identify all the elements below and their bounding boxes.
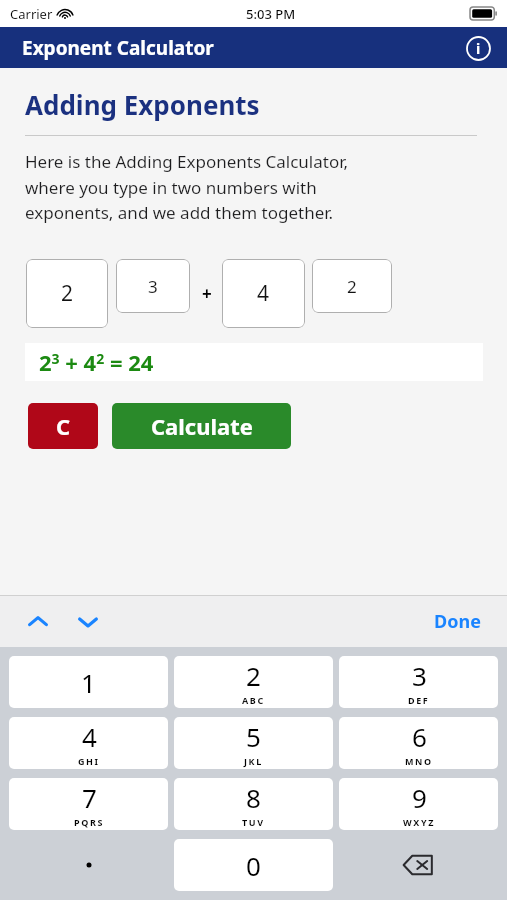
button[interactable]: Backspace — [339, 839, 498, 891]
staticText: 3 — [148, 275, 158, 298]
staticText: ABC — [242, 694, 265, 706]
button[interactable]: 4 — [222, 259, 305, 328]
staticText: 8 — [246, 780, 261, 815]
staticText: Carrier — [10, 5, 53, 23]
staticText: GHI — [78, 755, 100, 767]
button[interactable]: 7 — [9, 778, 168, 830]
button[interactable]: 2 — [26, 259, 108, 328]
button[interactable]: Previous field — [18, 602, 58, 642]
button[interactable]: 3 — [339, 656, 498, 708]
staticText: 5 — [246, 719, 261, 754]
staticText: + — [202, 282, 212, 305]
staticText: Adding Exponents — [25, 87, 260, 122]
button[interactable]: Done — [428, 601, 487, 642]
button[interactable]: 1 — [9, 656, 168, 708]
staticText: 23 + 42 = 24 — [39, 347, 154, 377]
staticText: 3 — [412, 658, 427, 693]
button[interactable]: 9 — [339, 778, 498, 830]
button[interactable]: 3 — [116, 259, 190, 313]
button[interactable]: Info — [463, 33, 493, 63]
button[interactable]: C — [28, 403, 98, 449]
staticText: Exponent Calculator — [22, 35, 214, 61]
staticText: 7 — [82, 780, 97, 815]
staticText: 1 — [81, 665, 96, 700]
staticText: TUV — [242, 816, 265, 828]
button[interactable]: 4 — [9, 717, 168, 769]
staticText: PQRS — [74, 816, 104, 828]
staticText: 9 — [412, 780, 427, 815]
staticText: 2 — [246, 658, 261, 693]
button[interactable]: Next field — [68, 602, 108, 642]
button[interactable]: 6 — [339, 717, 498, 769]
button[interactable]: Calculate — [112, 403, 291, 449]
staticText: 2 — [61, 279, 74, 308]
button[interactable]: 8 — [174, 778, 333, 830]
staticText: JKL — [244, 755, 263, 767]
staticText: C — [56, 411, 71, 441]
button[interactable]: 2 — [174, 656, 333, 708]
button[interactable]: 0 — [174, 839, 333, 891]
staticText: WXYZ — [403, 816, 435, 828]
staticText: 0 — [246, 848, 261, 883]
button[interactable]: 5 — [174, 717, 333, 769]
staticText: 4 — [82, 719, 97, 754]
button[interactable]: 2 — [312, 259, 392, 313]
staticText: Done — [434, 609, 481, 634]
staticText: MNO — [405, 755, 433, 767]
staticText: Here is the Adding Exponents Calculator,… — [25, 150, 349, 224]
staticText: i — [476, 39, 481, 58]
button[interactable]: Decimal point — [9, 839, 168, 891]
staticText: 5:03 PM — [246, 5, 296, 23]
staticText: 6 — [412, 719, 427, 754]
staticText: 2 — [347, 275, 357, 298]
staticText: DEF — [408, 694, 430, 706]
staticText: Calculate — [151, 411, 253, 441]
staticText: 4 — [257, 279, 270, 308]
